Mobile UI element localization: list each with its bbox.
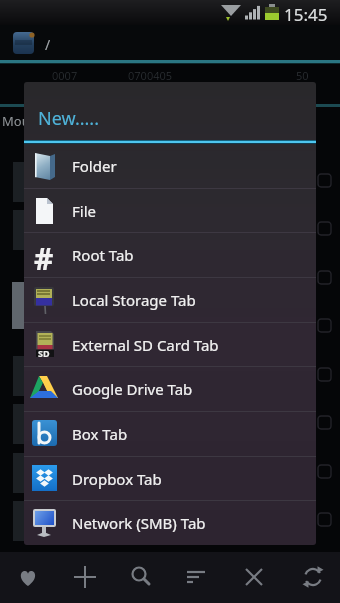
staticText: 0700405 — [128, 68, 173, 83]
button[interactable]: Network (SMB) Tab — [24, 500, 316, 545]
button[interactable]: File — [24, 188, 316, 233]
staticText: External SD Card Tab — [72, 335, 219, 355]
button[interactable] — [8, 27, 44, 58]
staticText: Dropbox Tab — [72, 469, 162, 489]
button[interactable]: SD — [24, 322, 316, 367]
staticText: Google Drive Tab — [72, 379, 193, 399]
button[interactable] — [12, 561, 44, 593]
staticText: Network (SMB) Tab — [72, 513, 206, 533]
button[interactable]: Dropbox Tab — [24, 456, 316, 501]
button[interactable] — [69, 561, 101, 593]
staticText: Root Tab — [72, 245, 134, 265]
staticText: Local Storage Tab — [72, 290, 196, 310]
button[interactable]: # — [24, 232, 316, 277]
staticText: Folder — [72, 156, 117, 176]
button[interactable]: Local Storage Tab — [24, 277, 316, 322]
staticText: # — [34, 238, 54, 272]
button[interactable]: Box Tab — [24, 411, 316, 456]
staticText: Mou — [2, 112, 30, 130]
button[interactable]: Google Drive Tab — [24, 366, 316, 411]
staticText: 15:45 — [284, 3, 328, 26]
button[interactable] — [297, 561, 329, 593]
staticText: SD — [38, 347, 50, 359]
button[interactable] — [181, 561, 213, 593]
staticText: / — [45, 35, 51, 54]
staticText: File — [72, 201, 96, 221]
staticText: 50 — [296, 68, 309, 83]
button[interactable] — [238, 561, 270, 593]
button[interactable]: Folder — [24, 143, 316, 188]
staticText: New..... — [38, 106, 100, 131]
staticText: 0007 — [52, 68, 78, 83]
staticText: Box Tab — [72, 424, 128, 444]
button[interactable] — [125, 561, 157, 593]
